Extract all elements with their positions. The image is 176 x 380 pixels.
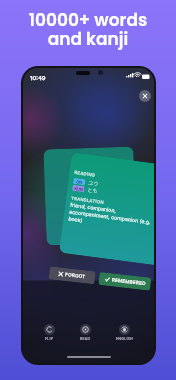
button[interactable]: ENGLISH bbox=[112, 321, 137, 344]
staticText: READING bbox=[74, 170, 96, 178]
button[interactable]: FORGOT bbox=[49, 266, 96, 284]
staticText: REMEMBERED bbox=[112, 277, 146, 286]
staticText: TRANSLATION bbox=[71, 196, 105, 205]
staticText: KUN bbox=[74, 186, 84, 192]
button[interactable]: READ bbox=[76, 321, 95, 344]
staticText: ENGLISH bbox=[116, 337, 133, 341]
button[interactable]: FLIP bbox=[40, 321, 59, 344]
staticText: FLIP bbox=[45, 337, 54, 341]
staticText: friend, companion, accompaniment, compan… bbox=[68, 202, 152, 232]
staticText: 10000+ words and kanji bbox=[0, 8, 176, 51]
button[interactable]: REMEMBERED bbox=[98, 272, 151, 291]
staticText: ユウ bbox=[88, 179, 100, 188]
staticText: FORGOT bbox=[65, 272, 86, 279]
staticText: READ bbox=[80, 337, 91, 341]
staticText: 10:49 bbox=[30, 74, 46, 81]
staticText: とも bbox=[87, 186, 99, 195]
staticText: ON bbox=[76, 179, 83, 185]
button[interactable]: READING bbox=[59, 152, 154, 267]
button[interactable]: Close bbox=[139, 90, 151, 102]
